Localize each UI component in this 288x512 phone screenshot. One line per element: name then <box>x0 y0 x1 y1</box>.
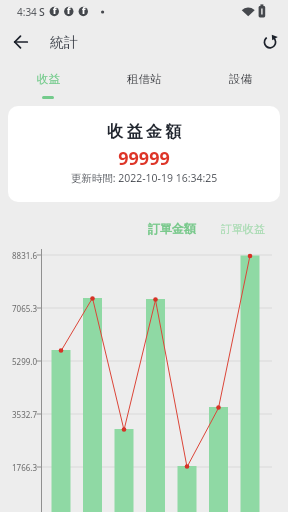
staticText: f <box>53 5 57 17</box>
staticText: 99999 <box>8 146 280 171</box>
staticText: 3532.7 <box>0 409 37 420</box>
staticText: 設備 <box>229 72 252 86</box>
button[interactable]: 設備 <box>192 60 288 97</box>
staticText: f <box>67 5 71 17</box>
button[interactable]: 收益金額 <box>8 106 280 202</box>
staticText: 租借站 <box>127 72 162 86</box>
staticText: 5299.0 <box>0 356 37 367</box>
staticText: 7065.3 <box>0 303 37 314</box>
staticText: 4:34 <box>17 5 37 19</box>
button[interactable]: 收益 <box>0 60 96 97</box>
button[interactable]: 訂單收益 <box>221 222 265 236</box>
staticText: 收益 <box>37 72 60 86</box>
button[interactable] <box>252 24 288 60</box>
staticText: 8831.6 <box>0 250 37 261</box>
staticText: S <box>39 5 45 19</box>
staticText: 收益金額 <box>10 122 280 142</box>
button[interactable] <box>3 24 39 60</box>
staticText: 更新時間: 2022-10-19 16:34:25 <box>8 171 280 185</box>
staticText: 1766.3 <box>0 462 37 473</box>
staticText: 統計 <box>50 34 78 52</box>
button[interactable]: 訂單金額 <box>148 221 196 236</box>
button[interactable]: 租借站 <box>96 60 192 97</box>
staticText: f <box>82 5 86 17</box>
